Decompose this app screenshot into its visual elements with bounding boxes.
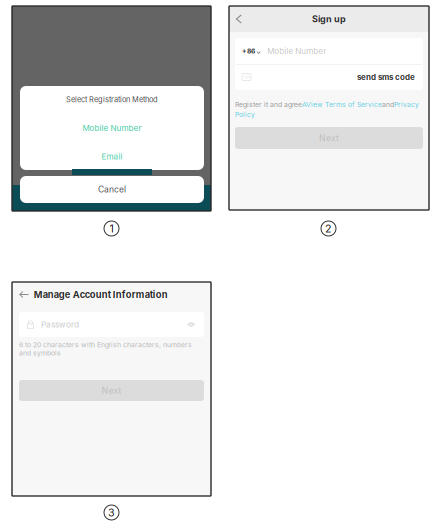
button[interactable]: Email <box>20 143 204 170</box>
staticText: Privacy <box>394 100 419 109</box>
staticText: 3 <box>108 506 115 519</box>
button[interactable]: Password <box>19 312 204 337</box>
button[interactable]: AView Terms of Service <box>302 100 382 109</box>
staticText: Mobile Number <box>82 123 141 133</box>
staticText: Register it and agree <box>235 100 302 109</box>
staticText: Next <box>319 133 339 143</box>
staticText: Select Registration Method <box>66 95 158 104</box>
button[interactable]: Mobile Number <box>20 113 204 143</box>
button[interactable]: Policy <box>235 110 255 119</box>
staticText: Next <box>101 385 121 396</box>
button[interactable]: Privacy <box>394 100 419 109</box>
button[interactable]: Cancel <box>20 176 204 203</box>
staticText: 2 <box>325 222 332 235</box>
staticText: Cancel <box>98 184 126 195</box>
staticText: 123 <box>243 75 249 79</box>
staticText: 6 to 20 characters with English characte… <box>19 341 192 357</box>
button[interactable]: +86 <box>235 38 423 64</box>
staticText: +86 <box>242 47 255 55</box>
staticText: send sms code <box>357 72 415 82</box>
button[interactable]: Back <box>229 6 249 32</box>
button[interactable]: send sms code <box>357 64 415 90</box>
button[interactable]: Back <box>12 282 36 307</box>
staticText: and <box>382 100 394 109</box>
staticText: 1 <box>109 222 113 235</box>
staticText: Sign up <box>312 13 346 24</box>
staticText: AView Terms of Service <box>302 100 382 109</box>
staticText: Password <box>41 320 79 329</box>
staticText: Manage Account Information <box>34 289 168 300</box>
staticText: Mobile Number <box>267 46 326 56</box>
staticText: Policy <box>235 110 255 119</box>
staticText: Email <box>101 152 122 161</box>
